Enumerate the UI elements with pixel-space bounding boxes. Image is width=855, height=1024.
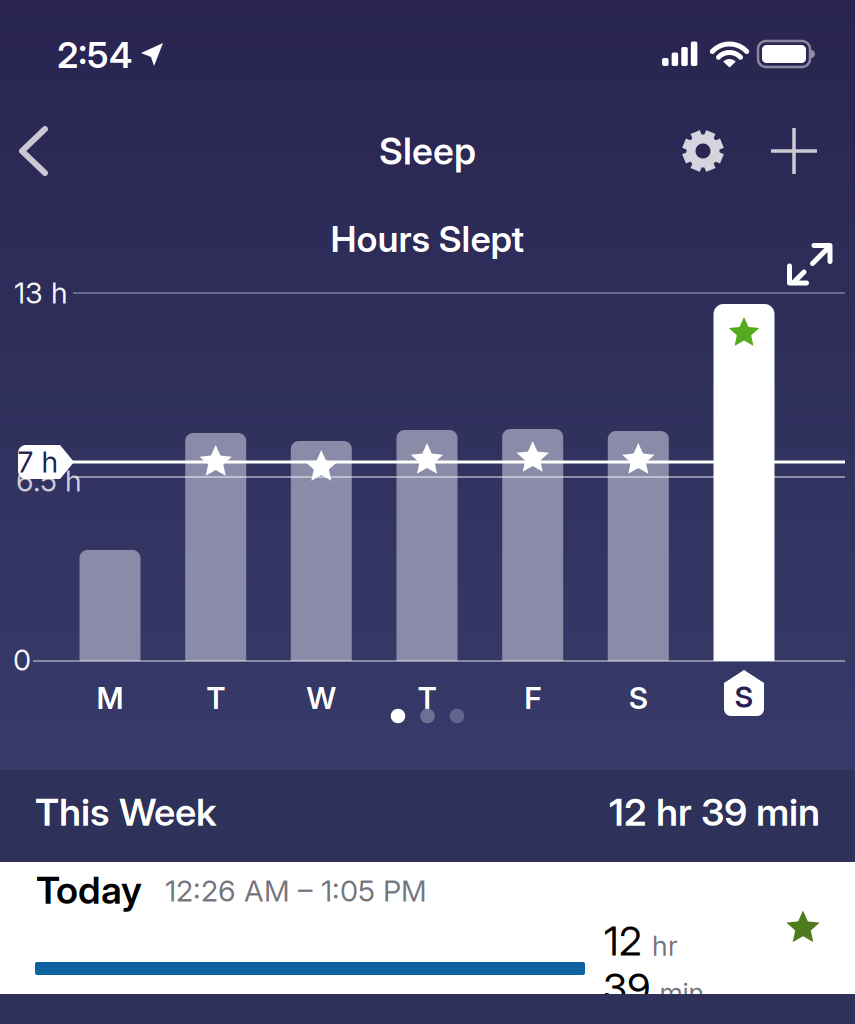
button[interactable]: Settings [675, 123, 731, 179]
staticText: hr [652, 930, 678, 962]
staticText: F [524, 680, 541, 716]
staticText: T [417, 680, 436, 716]
staticText: S [734, 679, 753, 715]
staticText: 7 h [17, 444, 58, 480]
staticText: 12 [604, 917, 642, 965]
staticText: S [629, 680, 648, 716]
button[interactable]: Expand chart [783, 237, 839, 293]
button[interactable]: Today, 12 hr 39 min [0, 862, 855, 1024]
staticText: Sleep [379, 129, 476, 173]
staticText: 13 h [14, 275, 68, 311]
staticText: T [206, 680, 225, 716]
staticText: 39 [603, 964, 651, 1012]
staticText: 0 [13, 642, 31, 678]
staticText: 2:54 [57, 33, 132, 77]
staticText: M [96, 680, 123, 716]
button[interactable]: Back [11, 120, 55, 182]
staticText: Hours Slept [330, 217, 524, 261]
staticText: W [306, 680, 336, 716]
staticText: This Week [35, 789, 217, 835]
staticText: 12 hr 39 min [609, 789, 820, 835]
staticText: Today [36, 867, 142, 913]
staticText: 12:26 AM – 1:05 PM [165, 873, 427, 909]
button[interactable]: Add [766, 123, 822, 179]
staticText: 6.5 h [16, 463, 82, 499]
staticText: min [659, 977, 704, 1009]
